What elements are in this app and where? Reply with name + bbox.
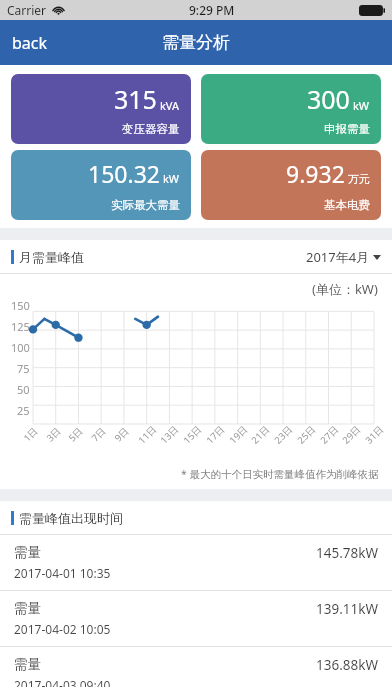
staticText: 13日: [157, 422, 181, 446]
staticText: 9:29 PM: [189, 2, 235, 18]
staticText: (单位：kW): [312, 280, 378, 298]
staticText: 136.88kW: [316, 656, 378, 674]
staticText: 7日: [89, 425, 108, 444]
staticText: 150.32: [88, 158, 160, 189]
staticText: 需量: [14, 656, 41, 673]
staticText: kW: [163, 171, 180, 186]
staticText: * 最大的十个日实时需量峰值作为削峰依据: [181, 467, 379, 481]
staticText: 2017年4月: [306, 248, 370, 266]
staticText: 75: [17, 361, 30, 376]
staticText: 9.932: [286, 158, 345, 189]
staticText: 2017-04-01 10:35: [14, 565, 111, 581]
staticText: 315: [114, 82, 157, 116]
staticText: 17日: [203, 422, 227, 446]
button[interactable]: 9.932: [201, 150, 381, 220]
button[interactable]: 2017年4月: [306, 248, 381, 266]
staticText: 139.11kW: [316, 600, 378, 618]
staticText: 2017-04-02 10:05: [14, 621, 111, 637]
button[interactable]: 300: [201, 74, 381, 144]
staticText: 月需量峰值: [19, 249, 84, 265]
staticText: 19日: [226, 422, 250, 446]
staticText: 25日: [294, 422, 318, 446]
staticText: 145.78kW: [316, 544, 378, 562]
staticText: 27日: [317, 422, 341, 446]
staticText: 需量: [14, 600, 41, 617]
staticText: 150: [11, 298, 30, 313]
staticText: 实际最大需量: [111, 198, 180, 212]
button[interactable]: 需量: [0, 535, 392, 591]
staticText: 100: [11, 340, 30, 355]
staticText: 9日: [112, 425, 131, 444]
staticText: 3日: [44, 425, 63, 444]
staticText: 300: [307, 82, 350, 116]
staticText: 23日: [271, 422, 295, 446]
staticText: 需量: [14, 544, 41, 561]
staticText: 需量峰值出现时间: [19, 510, 123, 526]
staticText: 31日: [362, 422, 386, 446]
staticText: 变压器容量: [122, 122, 180, 136]
button[interactable]: 315: [11, 74, 191, 144]
staticText: 基本电费: [324, 198, 370, 212]
staticText: 万元: [348, 172, 370, 186]
staticText: 25: [17, 403, 30, 418]
staticText: 21日: [248, 422, 272, 446]
staticText: 2017-04-03 09:40: [14, 677, 111, 687]
staticText: 1日: [21, 425, 40, 444]
button[interactable]: 需量: [0, 647, 392, 696]
staticText: 29日: [339, 422, 363, 446]
staticText: 15日: [180, 422, 204, 446]
staticText: kW: [353, 98, 370, 113]
button[interactable]: 150.32: [11, 150, 191, 220]
staticText: 125: [11, 319, 30, 334]
staticText: 50: [17, 382, 30, 397]
button[interactable]: 需量: [0, 591, 392, 647]
staticText: 11日: [135, 422, 159, 446]
button[interactable]: back: [0, 20, 60, 65]
staticText: 申报需量: [324, 122, 370, 136]
staticText: back: [12, 32, 48, 54]
staticText: kVA: [160, 98, 180, 113]
staticText: Carrier: [7, 2, 47, 18]
staticText: 需量分析: [162, 32, 230, 53]
staticText: 5日: [66, 425, 85, 444]
